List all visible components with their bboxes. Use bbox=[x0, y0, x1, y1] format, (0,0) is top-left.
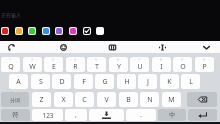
staticText: Q bbox=[8, 62, 14, 72]
button[interactable]: Colour 4 bbox=[43, 28, 49, 34]
button[interactable]: 符 bbox=[1, 109, 30, 121]
button[interactable]: M bbox=[162, 92, 181, 107]
staticText: N bbox=[147, 95, 153, 105]
staticText: R bbox=[73, 62, 78, 72]
button[interactable]: . bbox=[126, 109, 156, 121]
staticText: C bbox=[82, 95, 87, 105]
staticText: F bbox=[82, 77, 86, 87]
staticText: L bbox=[189, 77, 193, 87]
staticText: 8 bbox=[160, 57, 163, 62]
button[interactable]: , bbox=[65, 109, 87, 121]
button[interactable]: 6 bbox=[109, 57, 128, 72]
button[interactable]: D bbox=[52, 74, 71, 89]
staticText: V bbox=[104, 95, 109, 105]
staticText: 分词 bbox=[10, 97, 20, 103]
staticText: A bbox=[16, 77, 21, 87]
button[interactable]: B bbox=[119, 92, 138, 107]
staticText: W bbox=[29, 62, 36, 72]
button[interactable]: A bbox=[9, 74, 28, 89]
button[interactable]: 中 bbox=[158, 109, 186, 121]
button[interactable]: Colour 3 bbox=[29, 28, 35, 34]
button[interactable]: C bbox=[75, 92, 94, 107]
button[interactable]: 0 bbox=[195, 57, 214, 72]
staticText: 4 bbox=[74, 57, 77, 62]
staticText: I bbox=[160, 62, 163, 72]
button[interactable]: F bbox=[74, 74, 93, 89]
staticText: . bbox=[140, 110, 142, 120]
button[interactable]: J bbox=[138, 74, 157, 89]
button[interactable]: K bbox=[160, 74, 179, 89]
button[interactable]: Colour 2 bbox=[16, 28, 22, 34]
button[interactable]: 分词 bbox=[1, 92, 29, 107]
staticText: 6 bbox=[117, 57, 120, 62]
staticText: 7 bbox=[138, 57, 141, 62]
staticText: B bbox=[126, 95, 131, 105]
button[interactable]: 8 bbox=[152, 57, 171, 72]
button[interactable]: 123 bbox=[32, 109, 63, 121]
button[interactable]: Emoji bbox=[53, 41, 73, 53]
staticText: T bbox=[95, 62, 99, 72]
staticText: 9 bbox=[181, 57, 184, 62]
button[interactable]: Backspace bbox=[187, 92, 217, 107]
staticText: S bbox=[39, 77, 43, 87]
button[interactable]: 9 bbox=[173, 57, 192, 72]
button[interactable]: Colour 7 bbox=[84, 28, 90, 34]
button[interactable]: N bbox=[140, 92, 159, 107]
staticText: U bbox=[137, 62, 143, 72]
button[interactable]: Colour 1 bbox=[2, 28, 8, 34]
button[interactable]: Colour 6 bbox=[70, 28, 76, 34]
button[interactable]: Space bbox=[89, 109, 124, 121]
staticText: Z bbox=[39, 95, 44, 105]
button[interactable]: 7 bbox=[130, 57, 149, 72]
staticText: 正在输入 bbox=[1, 12, 21, 18]
staticText: K bbox=[167, 77, 172, 87]
button[interactable]: Hide keyboard bbox=[196, 41, 216, 53]
staticText: M bbox=[168, 95, 175, 105]
staticText: 2 bbox=[31, 57, 34, 62]
button[interactable]: S bbox=[31, 74, 50, 89]
staticText: O bbox=[180, 62, 186, 72]
staticText: 123 bbox=[42, 111, 54, 120]
button[interactable]: Enter bbox=[188, 109, 217, 121]
staticText: 3 bbox=[52, 57, 55, 62]
button[interactable]: Theme bbox=[1, 41, 21, 53]
button[interactable]: 3 bbox=[44, 57, 63, 72]
staticText: 0 bbox=[203, 57, 206, 62]
staticText: E bbox=[52, 62, 56, 72]
button[interactable]: 1 bbox=[1, 57, 20, 72]
button[interactable]: V bbox=[97, 92, 116, 107]
staticText: P bbox=[202, 62, 207, 72]
staticText: Y bbox=[117, 62, 121, 72]
staticText: 符 bbox=[12, 111, 19, 119]
button[interactable]: Keyboard layout bbox=[102, 41, 122, 53]
button[interactable]: Z bbox=[32, 92, 51, 107]
button[interactable]: H bbox=[117, 74, 136, 89]
button[interactable]: L bbox=[181, 74, 200, 89]
staticText: , bbox=[75, 110, 77, 120]
button[interactable]: Colour 5 bbox=[56, 28, 62, 34]
button[interactable]: Move cursor bbox=[152, 41, 172, 53]
staticText: 中 bbox=[169, 111, 176, 119]
staticText: D bbox=[59, 77, 65, 87]
staticText: 1 bbox=[9, 57, 12, 62]
staticText: X bbox=[61, 95, 66, 105]
button[interactable]: 4 bbox=[66, 57, 85, 72]
button[interactable]: X bbox=[54, 92, 73, 107]
staticText: 5 bbox=[95, 57, 98, 62]
staticText: J bbox=[147, 77, 149, 87]
button[interactable]: 2 bbox=[23, 57, 42, 72]
button[interactable]: G bbox=[95, 74, 114, 89]
staticText: H bbox=[124, 77, 130, 87]
staticText: G bbox=[102, 77, 108, 87]
button[interactable]: 5 bbox=[87, 57, 106, 72]
